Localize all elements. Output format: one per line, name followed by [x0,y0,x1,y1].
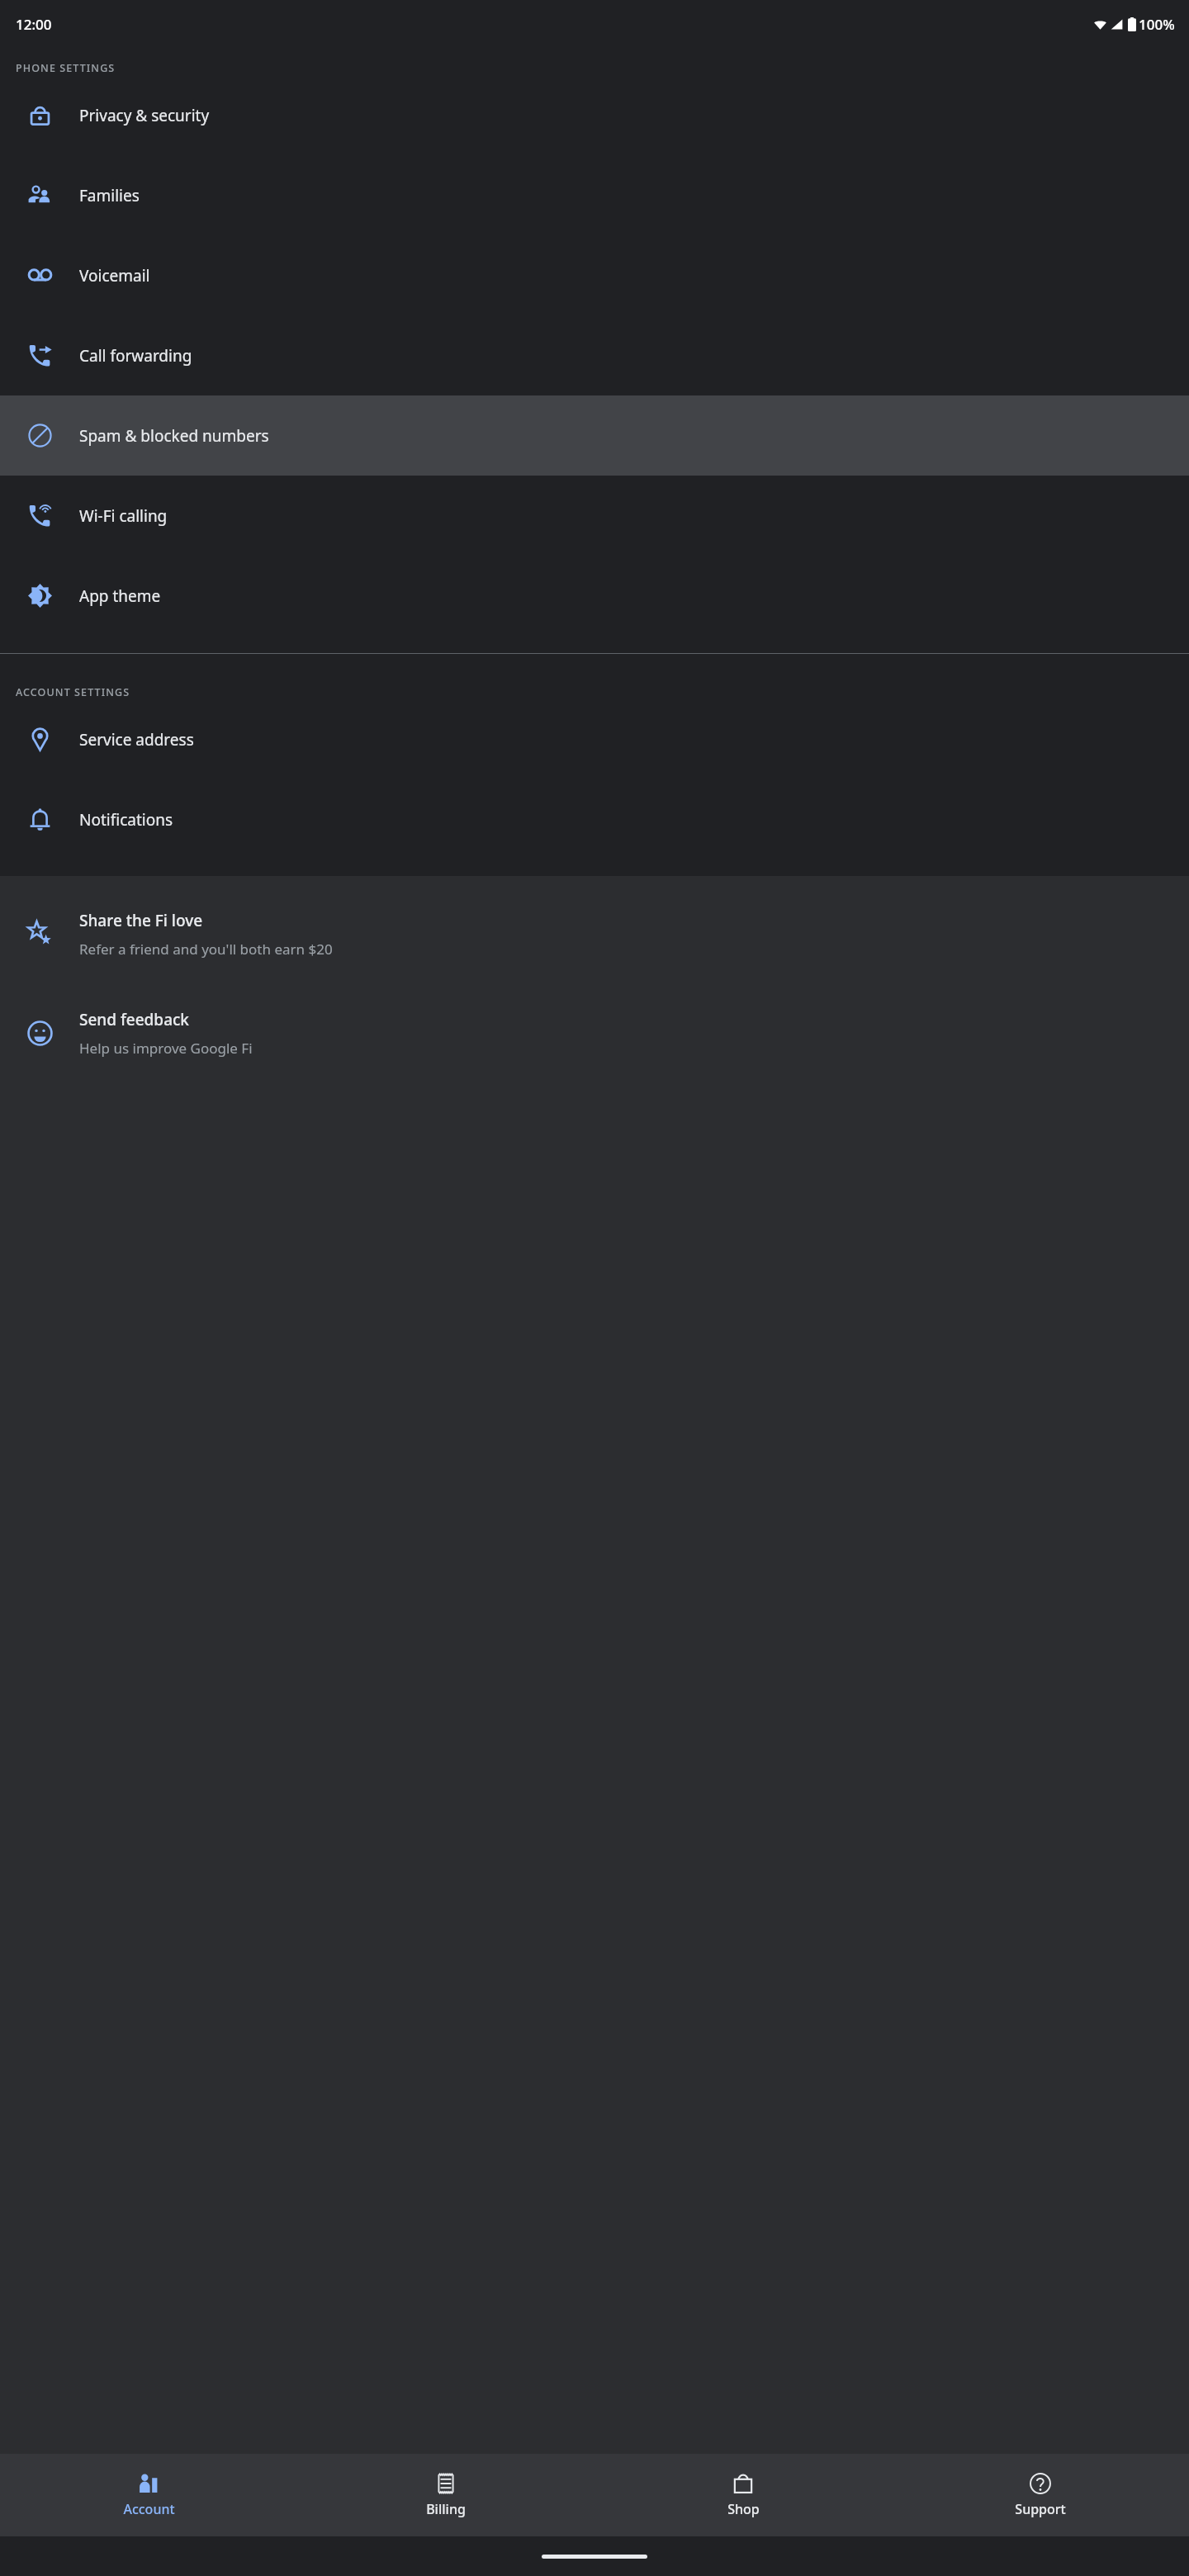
staticText: Billing [426,2500,466,2518]
staticText: 100% [1139,15,1175,34]
button[interactable]: Share the Fi love [0,884,1189,983]
button[interactable]: Shop [594,2454,892,2536]
staticText: Notifications [79,809,173,831]
button[interactable]: Wi-Fi calling [0,476,1189,556]
staticText: Help us improve Google Fi [79,1039,253,1058]
staticText: Wi-Fi calling [79,505,168,527]
button[interactable]: Billing [297,2454,594,2536]
staticText: App theme [79,585,161,607]
other: Privacy and security [28,103,52,127]
staticText: Families [79,185,140,206]
button[interactable]: Account [0,2454,297,2536]
button[interactable]: Families [0,155,1189,235]
button[interactable]: Voicemail [0,235,1189,315]
button[interactable]: Call forwarding [0,315,1189,395]
staticText: Call forwarding [79,345,192,367]
staticText: 12:00 [16,15,52,34]
staticText: Account [123,2500,175,2518]
staticText: Share the Fi love [79,910,203,931]
staticText: ACCOUNT SETTINGS [16,685,130,699]
staticText: Service address [79,729,194,751]
staticText: Refer a friend and you'll both earn $20 [79,940,333,959]
button[interactable]: Service address [0,699,1189,779]
staticText: Privacy & security [79,105,210,126]
staticText: Voicemail [79,265,150,286]
staticText: Spam & blocked numbers [79,425,269,447]
button[interactable]: Privacy and security [0,75,1189,155]
staticText: PHONE SETTINGS [16,61,116,75]
button[interactable]: Support [892,2454,1189,2536]
staticText: Support [1015,2500,1066,2518]
button[interactable]: Send feedback [0,983,1189,1082]
button[interactable]: App theme [0,556,1189,636]
button[interactable]: Spam & blocked numbers [0,395,1189,476]
button[interactable]: Notifications [0,779,1189,859]
staticText: Shop [727,2500,760,2518]
staticText: Send feedback [79,1009,189,1030]
